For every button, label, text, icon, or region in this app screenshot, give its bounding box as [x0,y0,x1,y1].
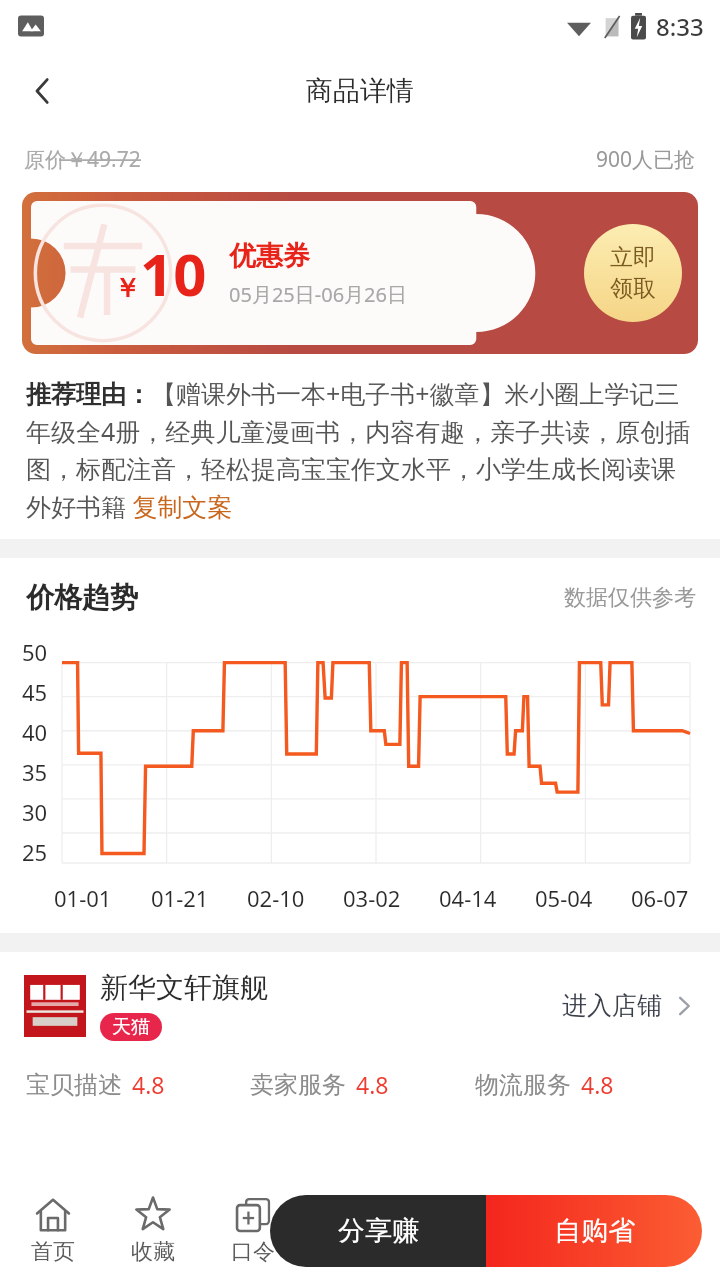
staticText: 02-10 [247,883,305,913]
staticText: ￥ [114,272,140,305]
staticText: 数据仅供参考 [564,584,696,612]
button[interactable]: 进入店铺 [562,990,696,1021]
staticText: 卖家服务 [250,1070,346,1100]
staticText: 4.8 [356,1069,389,1100]
staticText: 物流服务 [475,1070,571,1100]
staticText: 05-04 [535,883,593,913]
button[interactable]: 新华文轩旗舰 [24,970,696,1041]
button[interactable]: Back [12,60,74,122]
staticText: 50 [22,637,48,667]
staticText: 05月25日-06月26日 [229,281,407,308]
staticText: 宝贝描述 [26,1070,122,1100]
staticText: 4.8 [132,1069,165,1100]
staticText: 35 [22,757,48,787]
staticText: 8:33 [656,10,704,43]
staticText: 45 [22,677,48,707]
staticText: 领取 [610,274,656,303]
staticText: 30 [22,797,48,827]
staticText: 40 [22,717,48,747]
staticText: 04-14 [439,883,497,913]
button[interactable]: 收藏 [114,1196,192,1266]
staticText: 03-02 [343,883,401,913]
staticText: 自购省 [554,1214,635,1248]
staticText: 口令 [231,1238,275,1266]
staticText: 优惠券 [229,239,310,273]
staticText: 10 [140,234,207,313]
button[interactable]: 分享赚 [270,1195,486,1267]
button[interactable]: 首页 [14,1196,92,1266]
staticText: 进入店铺 [562,990,662,1021]
staticText: 商品详情 [306,74,414,108]
staticText: 4.8 [581,1069,614,1100]
staticText: 收藏 [131,1238,175,1266]
staticText: 01-21 [151,883,209,913]
staticText: 01-01 [54,883,112,913]
button[interactable]: ￥ [22,192,698,354]
staticText: 原价￥49.72 [24,145,141,174]
staticText: 25 [22,837,48,867]
staticText: 新华文轩旗舰 [100,970,268,1005]
staticText: 分享赚 [338,1214,419,1248]
staticText: 天猫 [112,1015,150,1039]
staticText: 推荐理由：【赠课外书一本+电子书+徽章】米小圈上学记三年级全4册，经典儿童漫画书… [26,376,698,523]
button[interactable]: 立即 [584,224,682,322]
button[interactable]: 自购省 [486,1195,702,1267]
staticText: 价格趋势 [26,580,138,615]
staticText: 06-07 [631,883,689,913]
staticText: 900人已抢 [596,145,696,174]
button[interactable]: 口令 [214,1196,292,1266]
staticText: 首页 [31,1238,75,1266]
staticText: 立即 [610,243,656,272]
